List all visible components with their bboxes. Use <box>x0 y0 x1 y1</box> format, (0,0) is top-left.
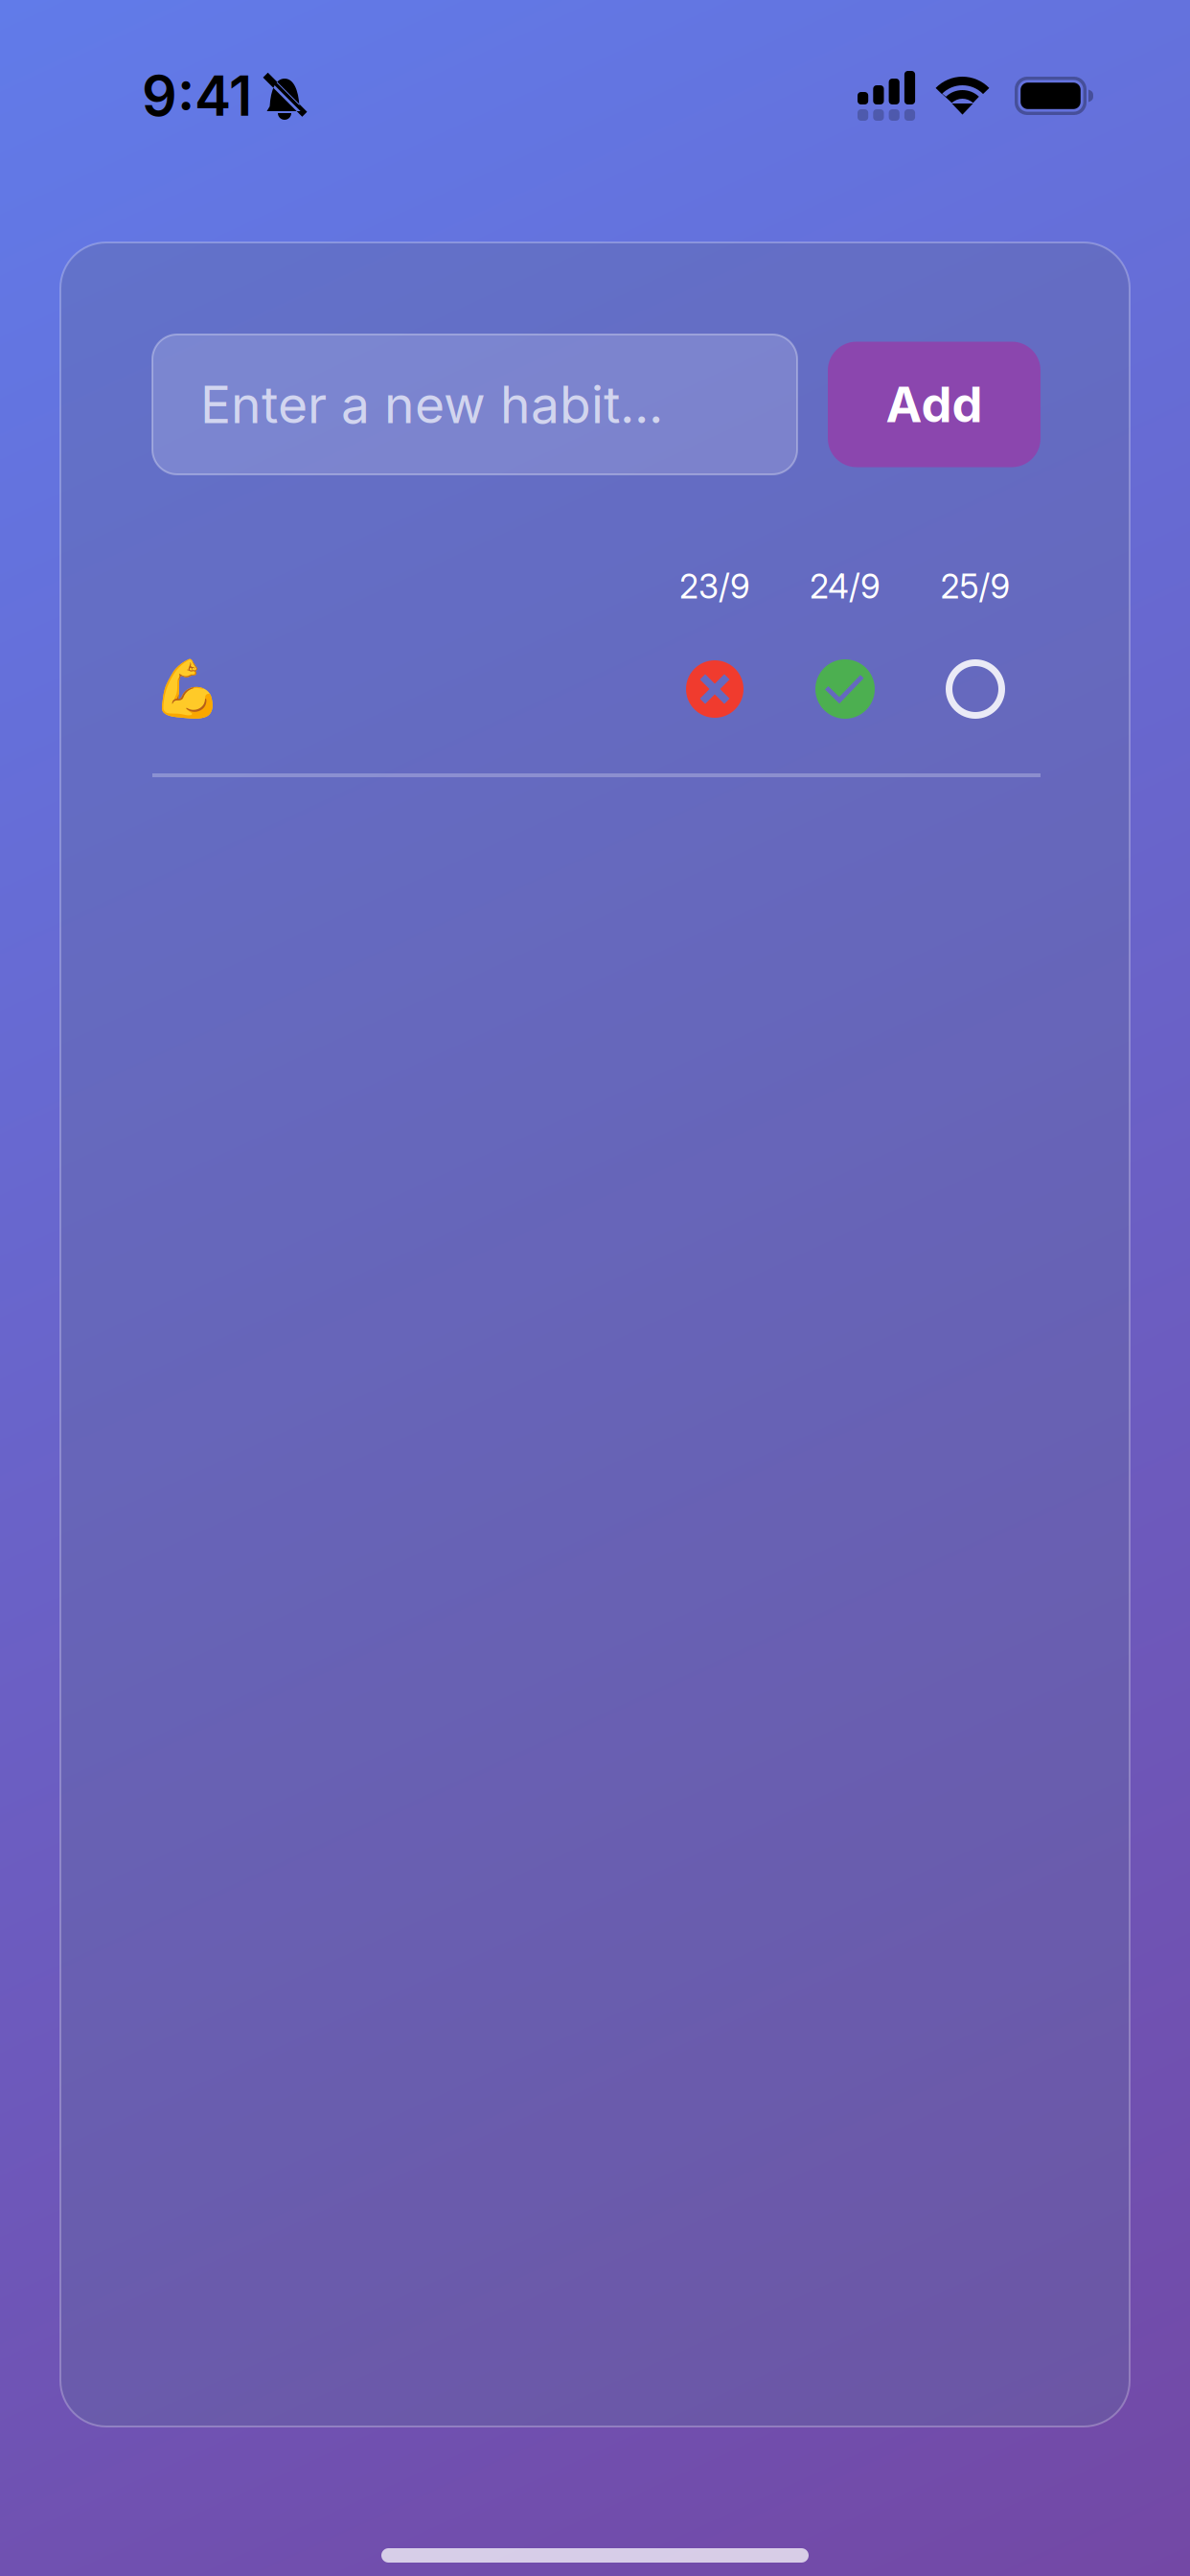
button[interactable]: Mark 23 September not done <box>650 647 780 731</box>
staticText: 24/9 <box>810 566 881 607</box>
button[interactable]: Mark 25 September <box>910 647 1041 731</box>
staticText: 25/9 <box>940 566 1010 607</box>
button[interactable]: Add <box>828 342 1041 467</box>
staticText: 💪 <box>152 656 222 722</box>
staticText: 9:41 <box>142 63 252 129</box>
staticText: Add <box>886 375 983 434</box>
button[interactable]: Mark 24 September done <box>780 647 910 731</box>
staticText: Enter a new habit... <box>200 373 663 435</box>
staticText: 23/9 <box>679 566 750 607</box>
